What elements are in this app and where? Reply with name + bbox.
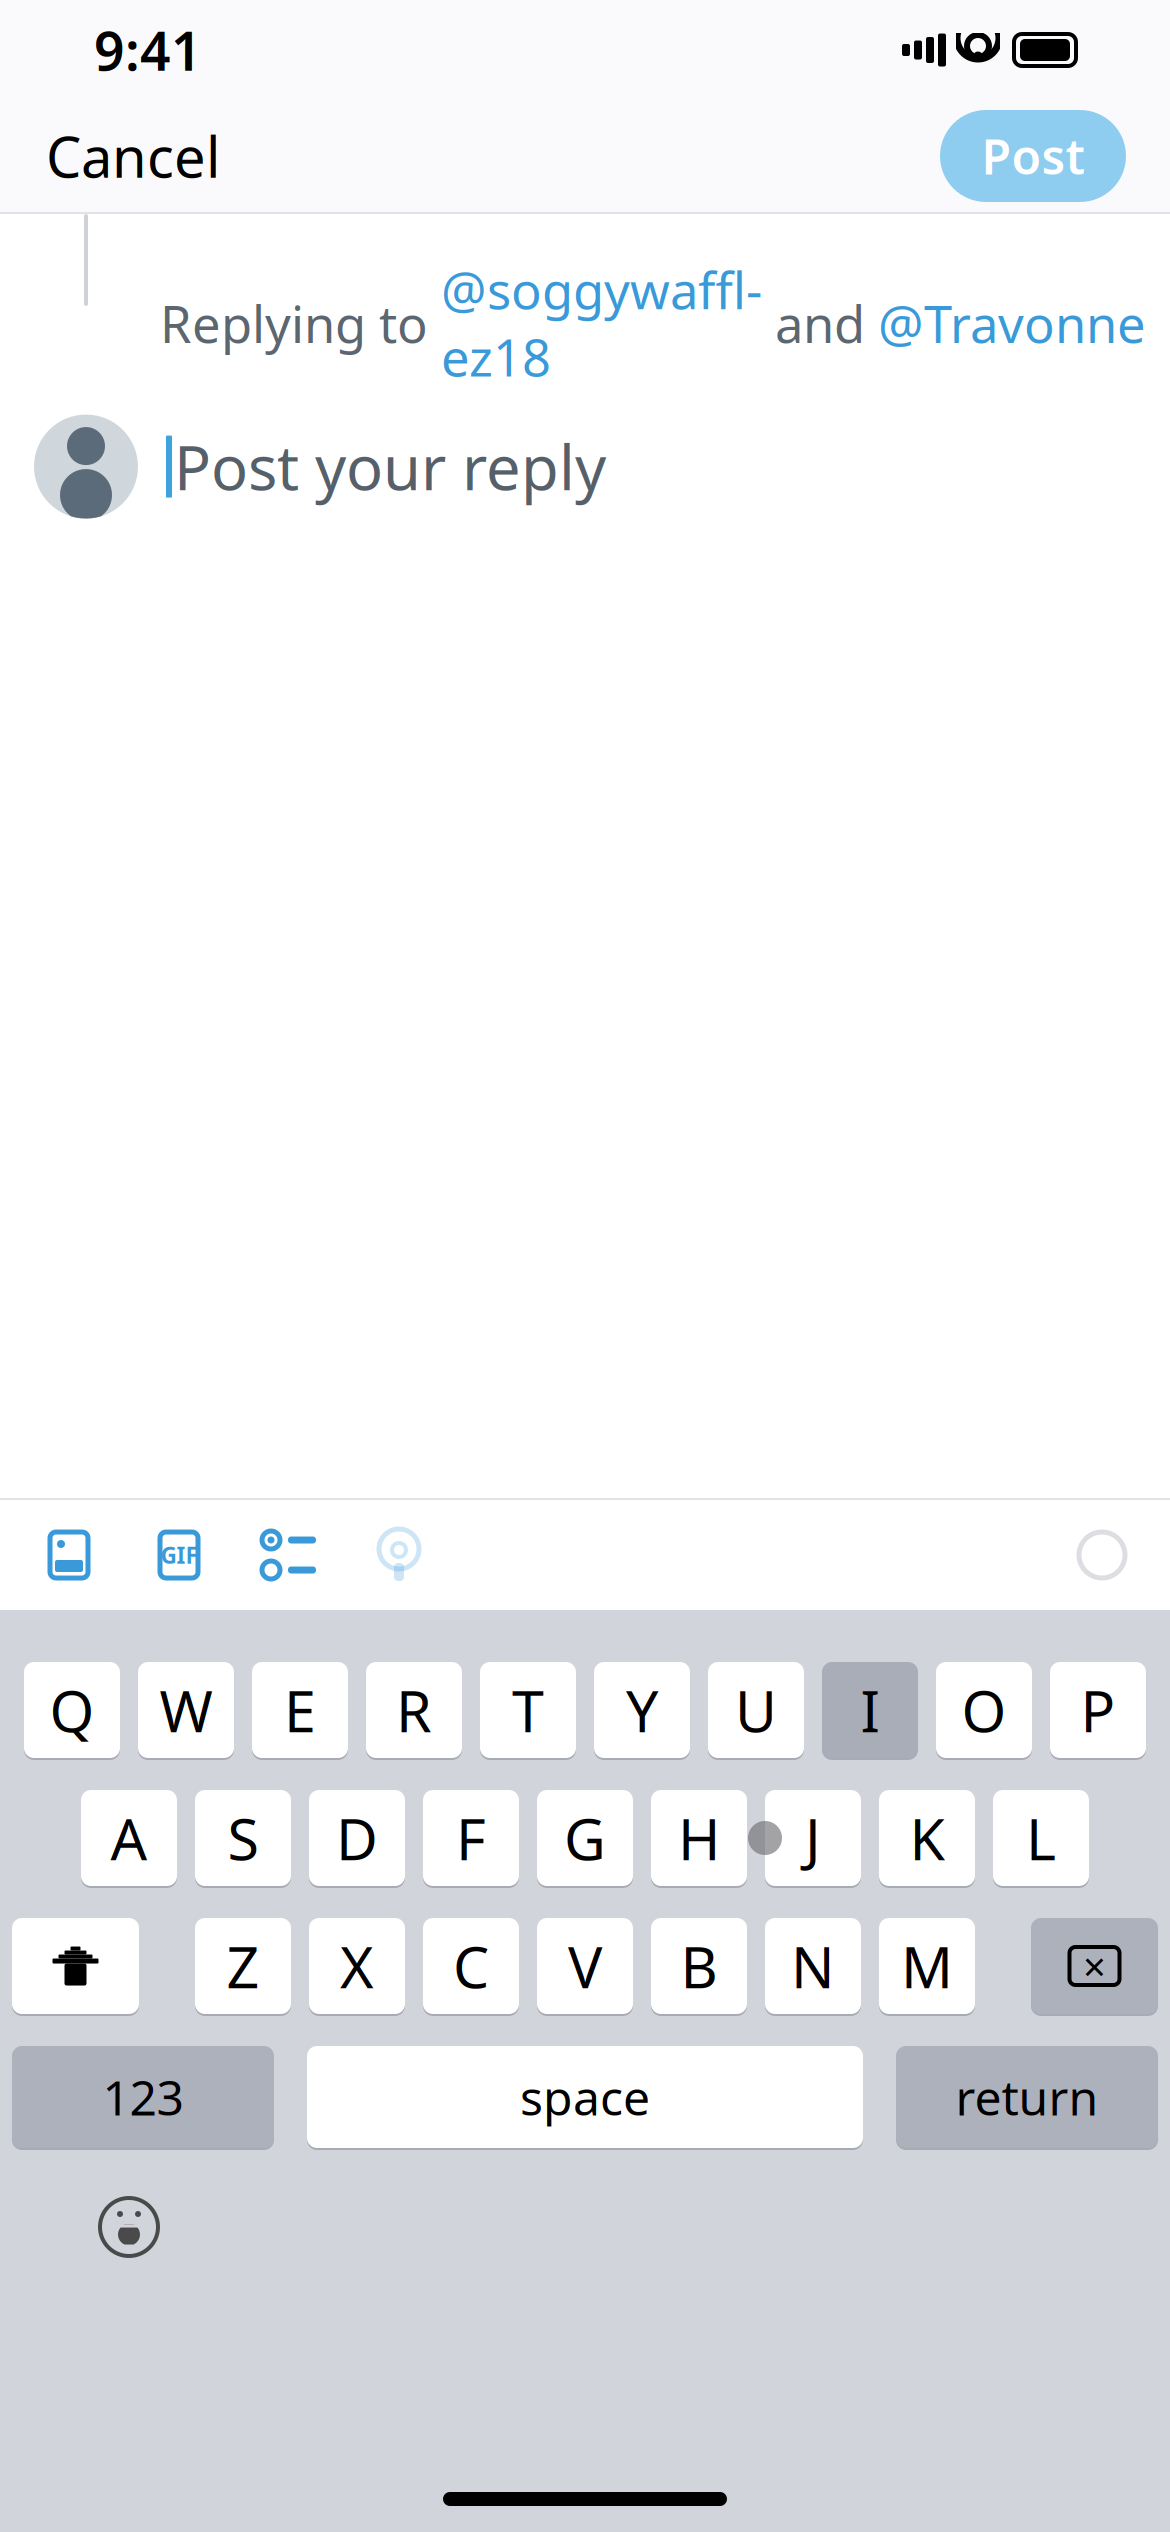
- staticText: J: [805, 1800, 821, 1876]
- staticText: @soggywafflez18: [441, 256, 762, 391]
- staticText: Y: [626, 1672, 658, 1748]
- staticText: R: [396, 1672, 432, 1748]
- button[interactable]: Shift: [12, 1916, 139, 2016]
- button[interactable]: @Travonne: [878, 290, 1146, 357]
- button[interactable]: Tag location: [344, 1500, 454, 1610]
- staticText: O: [961, 1672, 1006, 1748]
- staticText: B: [680, 1928, 717, 2004]
- button[interactable]: Z: [195, 1916, 291, 2016]
- staticText: M: [901, 1928, 953, 2004]
- button[interactable]: return: [896, 2044, 1158, 2150]
- button[interactable]: P: [1050, 1660, 1146, 1760]
- button[interactable]: Q: [24, 1660, 120, 1760]
- staticText: V: [568, 1928, 602, 2004]
- button[interactable]: G: [537, 1788, 633, 1888]
- staticText: E: [284, 1672, 316, 1748]
- button[interactable]: A: [81, 1788, 177, 1888]
- staticText: Z: [226, 1928, 259, 2004]
- staticText: 9:41: [94, 15, 202, 85]
- staticText: and: [762, 290, 878, 357]
- button[interactable]: I: [822, 1660, 918, 1760]
- staticText: D: [336, 1800, 378, 1876]
- staticText: 123: [102, 2065, 183, 2129]
- button[interactable]: C: [423, 1916, 519, 2016]
- button[interactable]: S: [195, 1788, 291, 1888]
- staticText: I: [860, 1672, 879, 1748]
- staticText: @Travonne: [878, 290, 1146, 357]
- button[interactable]: O: [936, 1660, 1032, 1760]
- staticText: G: [564, 1800, 606, 1876]
- button[interactable]: L: [993, 1788, 1089, 1888]
- button[interactable]: Y: [594, 1660, 690, 1760]
- button[interactable]: @soggywafflez18: [441, 256, 762, 391]
- staticText: N: [791, 1928, 835, 2004]
- button[interactable]: N: [765, 1916, 861, 2016]
- staticText: K: [909, 1800, 944, 1876]
- staticText: C: [453, 1928, 489, 2004]
- button[interactable]: B: [651, 1916, 747, 2016]
- staticText: Q: [49, 1672, 94, 1748]
- button[interactable]: H: [651, 1788, 747, 1888]
- button[interactable]: T: [480, 1660, 576, 1760]
- staticText: Replying to: [160, 290, 441, 357]
- button[interactable]: K: [879, 1788, 975, 1888]
- button[interactable]: D: [309, 1788, 405, 1888]
- button[interactable]: X: [309, 1916, 405, 2016]
- button[interactable]: U: [708, 1660, 804, 1760]
- button[interactable]: Delete: [1031, 1916, 1158, 2016]
- staticText: return: [955, 2065, 1098, 2129]
- staticText: GIF: [160, 1540, 197, 1570]
- staticText: U: [735, 1672, 777, 1748]
- staticText: A: [110, 1800, 147, 1876]
- button[interactable]: R: [366, 1660, 462, 1760]
- staticText: X: [340, 1928, 374, 2004]
- button[interactable]: Add GIF: [124, 1500, 234, 1610]
- staticText: ×: [1083, 1939, 1106, 1992]
- staticText: F: [456, 1800, 486, 1876]
- button[interactable]: E: [252, 1660, 348, 1760]
- button[interactable]: Post: [940, 110, 1126, 202]
- button[interactable]: J: [765, 1788, 861, 1888]
- staticText: T: [512, 1672, 544, 1748]
- staticText: Cancel: [46, 119, 220, 193]
- button[interactable]: Emoji: [74, 2172, 184, 2282]
- staticText: W: [159, 1672, 212, 1748]
- button[interactable]: Cancel: [0, 99, 266, 213]
- button[interactable]: W: [138, 1660, 234, 1760]
- button[interactable]: Character count: [1052, 1500, 1152, 1610]
- button[interactable]: M: [879, 1916, 975, 2016]
- staticText: L: [1026, 1800, 1056, 1876]
- button[interactable]: space: [307, 2044, 863, 2150]
- staticText: Post: [981, 124, 1084, 188]
- button[interactable]: 123: [12, 2044, 274, 2150]
- staticText: Post your reply: [174, 426, 606, 507]
- button[interactable]: F: [423, 1788, 519, 1888]
- staticText: space: [520, 2065, 650, 2129]
- staticText: P: [1080, 1672, 1115, 1748]
- staticText: H: [678, 1800, 720, 1876]
- button[interactable]: V: [537, 1916, 633, 2016]
- button[interactable]: Add poll: [234, 1500, 344, 1610]
- button[interactable]: Add photo: [14, 1500, 124, 1610]
- staticText: S: [227, 1800, 258, 1876]
